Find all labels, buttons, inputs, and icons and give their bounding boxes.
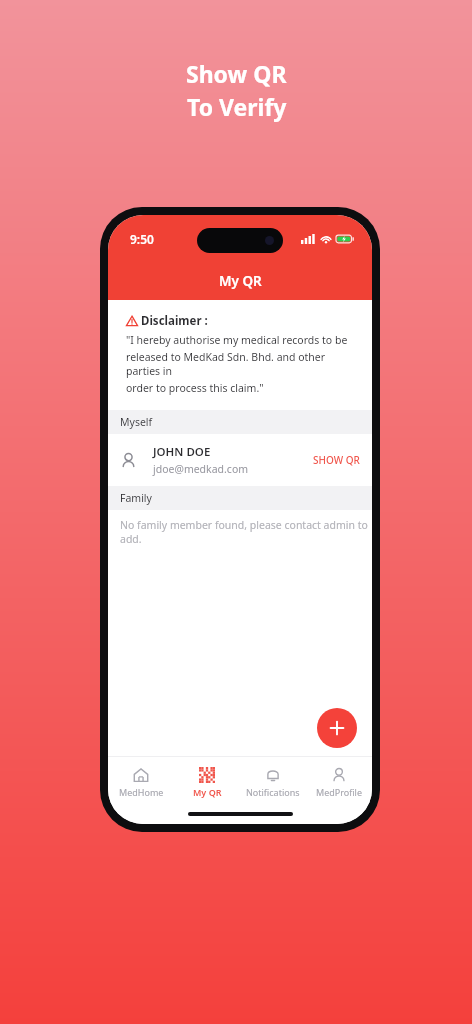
staticText: Show QR (186, 58, 287, 89)
staticText: My QR (193, 786, 222, 798)
button[interactable]: JOHN DOE (108, 434, 372, 486)
button[interactable]: MedHome (108, 765, 174, 800)
staticText: "I hereby authorise my medical records t… (126, 333, 348, 347)
staticText: order to process this claim." (126, 381, 264, 395)
staticText: Family (120, 491, 152, 505)
staticText: No family member found, please contact a… (120, 518, 372, 546)
staticText: My QR (219, 272, 262, 290)
button[interactable]: My QR (174, 765, 240, 800)
staticText: JOHN DOE (153, 444, 211, 460)
button[interactable]: MedProfile (306, 765, 372, 800)
staticText: released to MedKad Sdn. Bhd. and other p… (126, 350, 354, 378)
staticText: SHOW QR (313, 453, 360, 467)
button[interactable]: Add (317, 708, 357, 748)
staticText: Notifications (246, 786, 300, 798)
staticText: jdoe@medkad.com (153, 462, 249, 476)
staticText: Disclaimer : (141, 313, 208, 329)
button[interactable]: Notifications (240, 765, 306, 800)
staticText: 9:50 (130, 231, 154, 247)
staticText: To Verify (187, 91, 287, 122)
staticText: Myself (120, 415, 153, 429)
staticText: MedProfile (316, 786, 363, 798)
staticText: MedHome (119, 786, 164, 798)
